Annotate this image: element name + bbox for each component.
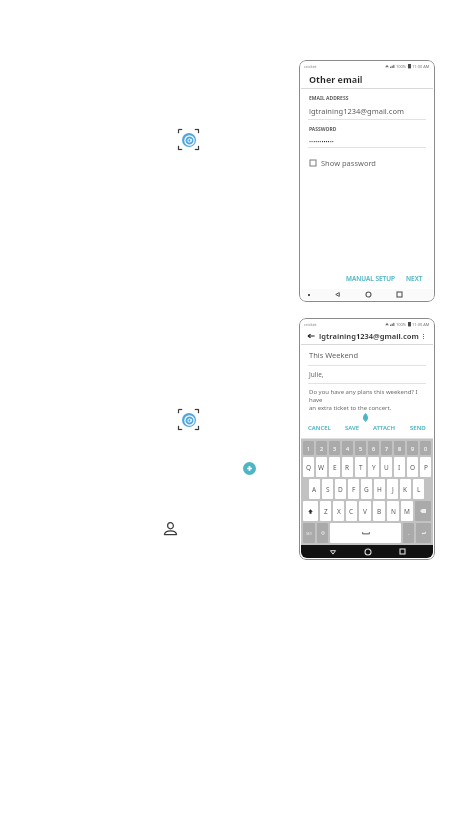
button[interactable]: R xyxy=(342,457,353,477)
button[interactable]: 2 xyxy=(316,441,327,455)
button[interactable]: F xyxy=(348,479,359,499)
button[interactable]: Z xyxy=(320,501,331,521)
staticText: J xyxy=(392,485,394,494)
staticText: 100% xyxy=(396,322,407,327)
button[interactable]: 4 xyxy=(342,441,353,455)
button[interactable]: Show password xyxy=(310,158,433,168)
button[interactable]: lgtraining1234@gmail.com xyxy=(309,106,425,116)
button[interactable]: Shift xyxy=(303,501,318,521)
button[interactable]: Backspace xyxy=(415,501,431,521)
button[interactable]: 3 xyxy=(329,441,340,455)
button[interactable]: X xyxy=(333,501,344,521)
button[interactable]: E xyxy=(329,457,340,477)
button[interactable]: SAVE xyxy=(344,424,361,432)
staticText: 8 xyxy=(398,445,402,452)
button[interactable]: T xyxy=(355,457,366,477)
button[interactable]: 9 xyxy=(407,441,418,455)
staticText: 100% xyxy=(396,64,407,69)
staticText: A xyxy=(312,485,317,494)
staticText: U xyxy=(384,463,389,472)
button[interactable]: Y xyxy=(368,457,379,477)
button[interactable]: P xyxy=(420,457,431,477)
button[interactable]: G xyxy=(361,479,372,499)
staticText: H xyxy=(377,485,382,494)
staticText: Do you have any plans this weekend? I ha… xyxy=(309,388,426,412)
button[interactable]: 7 xyxy=(381,441,392,455)
staticText: 11:00 AM xyxy=(412,64,430,69)
staticText: Julie, xyxy=(309,370,324,379)
button[interactable]: More options xyxy=(419,331,428,341)
button[interactable]: Home xyxy=(364,290,373,299)
staticText: . xyxy=(408,529,410,537)
button[interactable]: 5 xyxy=(355,441,366,455)
button[interactable]: NEXT xyxy=(404,274,425,283)
button[interactable]: H xyxy=(374,479,385,499)
button[interactable]: Q xyxy=(303,457,314,477)
button[interactable]: SEND xyxy=(409,424,427,432)
staticText: N xyxy=(391,507,396,516)
button[interactable]: Back xyxy=(333,290,342,299)
button[interactable]: Space xyxy=(330,523,401,543)
button[interactable]: A xyxy=(309,479,320,499)
staticText: G xyxy=(364,485,369,494)
staticText: D xyxy=(338,485,343,494)
button[interactable]: D xyxy=(335,479,346,499)
staticText: Z xyxy=(324,507,328,516)
button[interactable]: V xyxy=(359,501,371,521)
button[interactable]: •••••••••••• xyxy=(309,138,425,145)
staticText: !#1 xyxy=(306,531,312,536)
button[interactable]: Add xyxy=(243,462,256,475)
staticText: PASSWORD xyxy=(309,126,337,133)
button[interactable]: Settings xyxy=(317,523,328,543)
button[interactable]: Contact xyxy=(159,517,181,539)
staticText: 2 xyxy=(320,445,324,452)
button[interactable]: U xyxy=(381,457,392,477)
staticText: R xyxy=(345,463,350,472)
button[interactable]: S xyxy=(322,479,333,499)
button[interactable]: Back xyxy=(306,331,316,341)
button[interactable]: Home xyxy=(363,547,372,556)
staticText: 1 xyxy=(307,445,311,452)
button[interactable]: Recents xyxy=(398,547,407,556)
staticText: 0 xyxy=(424,445,428,452)
staticText: 11:00 AM xyxy=(412,322,430,327)
button[interactable]: I xyxy=(394,457,405,477)
button[interactable]: Symbols xyxy=(303,523,315,543)
button[interactable]: 1 xyxy=(303,441,314,455)
button[interactable]: N xyxy=(387,501,399,521)
button[interactable]: CANCEL xyxy=(307,424,332,432)
staticText: cricket xyxy=(304,64,317,69)
button[interactable]: L xyxy=(413,479,424,499)
staticText: This Weekend xyxy=(309,350,359,360)
button[interactable]: Email account xyxy=(182,413,196,427)
button[interactable]: W xyxy=(316,457,327,477)
button[interactable]: Recents xyxy=(395,290,404,299)
button[interactable]: B xyxy=(373,501,385,521)
staticText: K xyxy=(403,485,408,494)
button[interactable]: Enter xyxy=(416,523,431,543)
button[interactable]: 0 xyxy=(420,441,431,455)
button[interactable]: 6 xyxy=(368,441,379,455)
button[interactable]: O xyxy=(407,457,418,477)
button[interactable]: Email account xyxy=(182,133,196,147)
staticText: Show password xyxy=(321,158,376,168)
button[interactable]: J xyxy=(387,479,398,499)
button[interactable]: ATTACH xyxy=(372,424,397,432)
staticText: I xyxy=(398,463,401,472)
button[interactable]: 8 xyxy=(394,441,405,455)
staticText: T xyxy=(359,463,363,472)
staticText: 3 xyxy=(333,445,337,452)
staticText: lgtraining1234@gmail.com xyxy=(309,106,404,116)
button[interactable]: Back xyxy=(328,547,337,556)
staticText: E xyxy=(333,463,337,472)
button[interactable]: MANUAL SETUP xyxy=(344,274,398,283)
staticText: cricket xyxy=(304,322,317,327)
staticText: EMAIL ADDRESS xyxy=(309,95,349,102)
button[interactable]: M xyxy=(401,501,413,521)
staticText: Other email xyxy=(309,73,363,85)
staticText: O xyxy=(410,463,416,472)
button[interactable]: C xyxy=(346,501,357,521)
staticText: Q xyxy=(306,463,312,472)
button[interactable]: K xyxy=(400,479,411,499)
